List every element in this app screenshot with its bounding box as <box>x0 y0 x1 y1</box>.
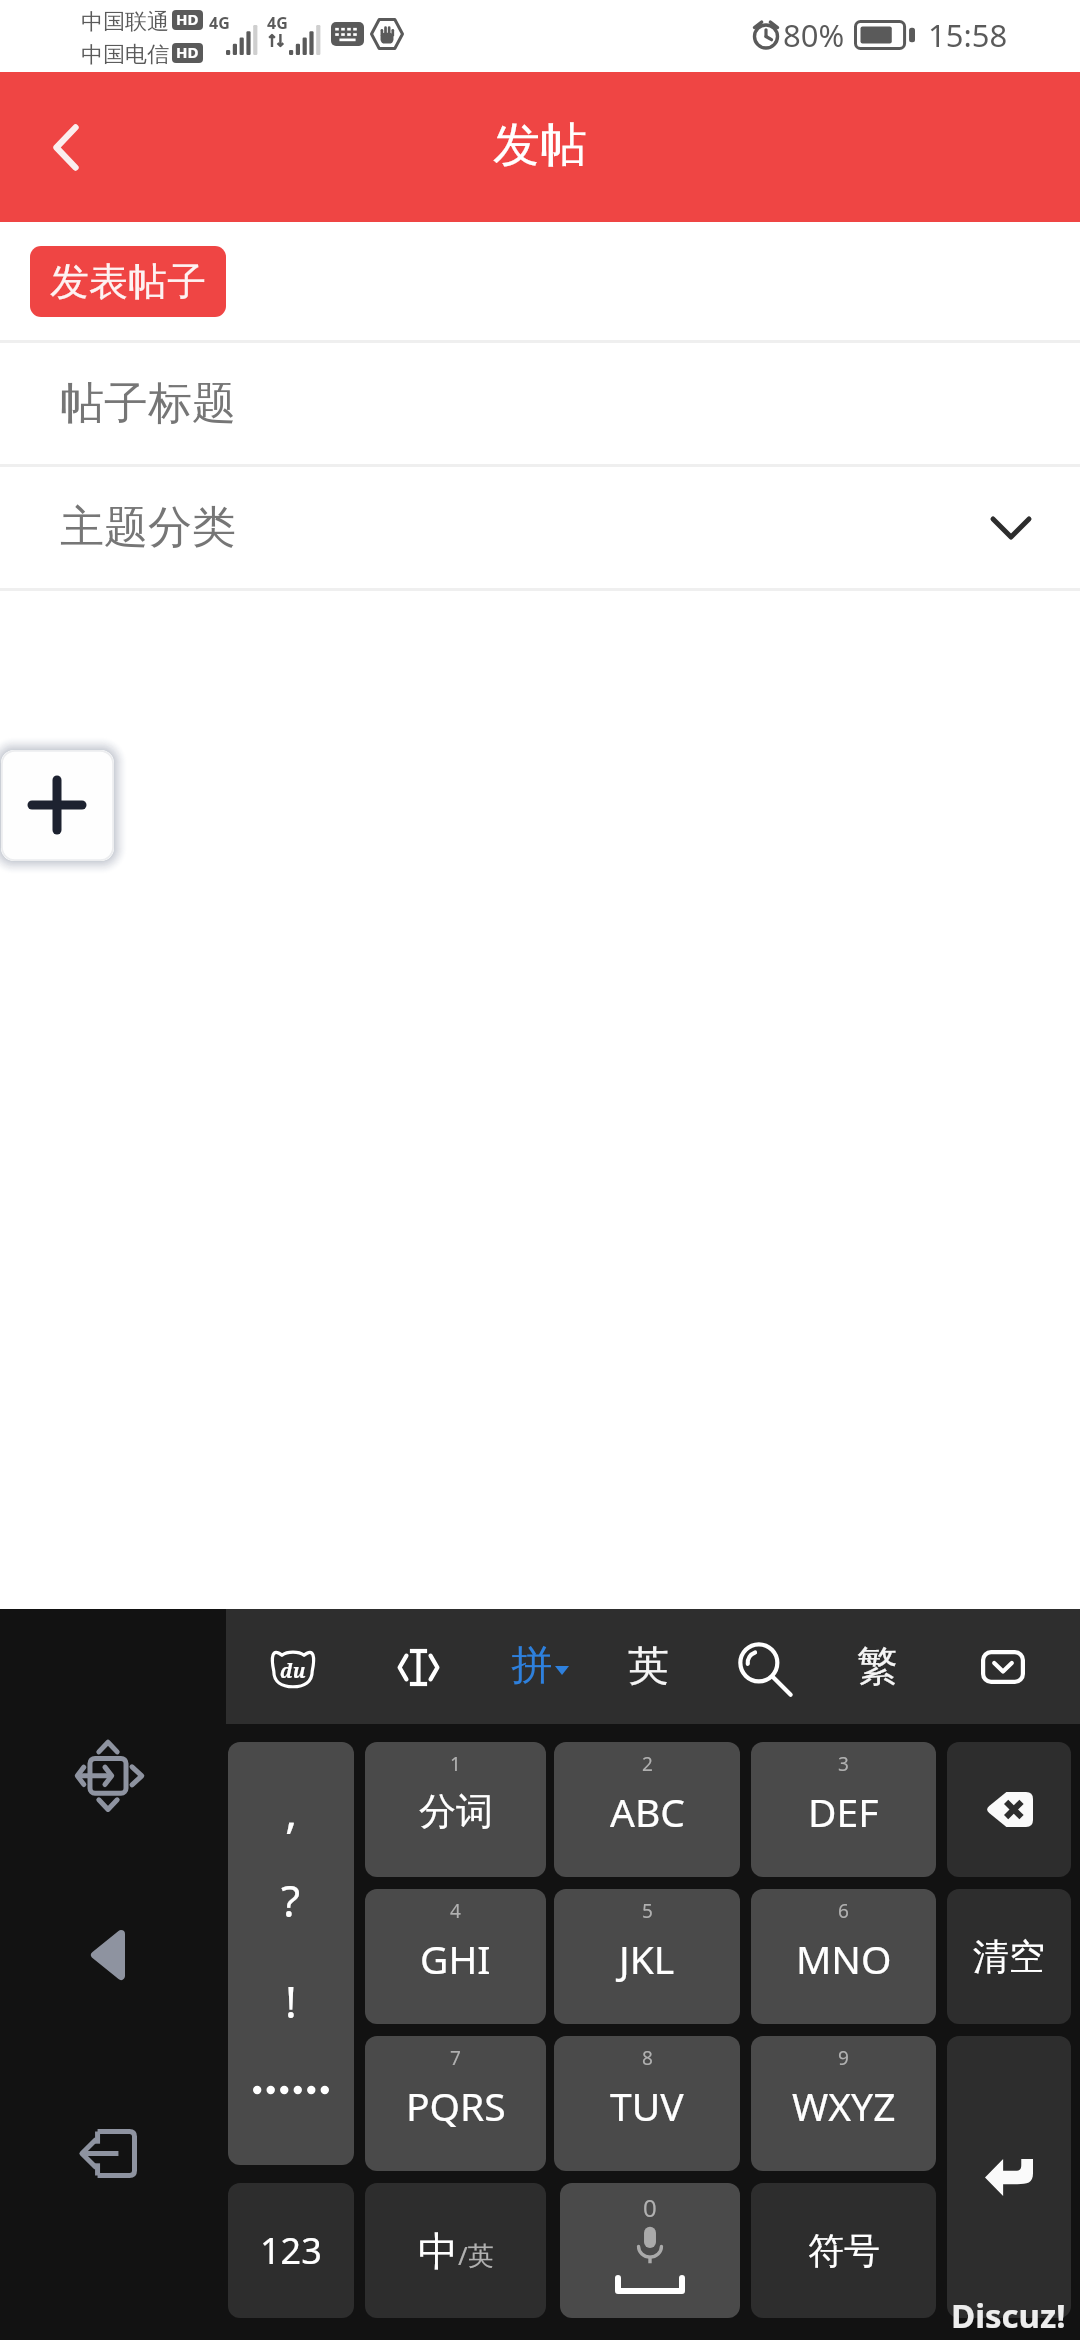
button[interactable]: 帖子标题 <box>0 343 1080 464</box>
staticText: 9 <box>838 2045 849 2071</box>
staticText: ! <box>285 1971 297 2031</box>
button[interactable]: 清空 <box>947 1889 1071 2024</box>
button[interactable]: 9 <box>751 2036 936 2171</box>
button[interactable]: Back <box>0 72 132 222</box>
staticText: ABC <box>610 1785 685 1838</box>
staticText: 2 <box>642 1751 653 1777</box>
staticText: 中国电信 <box>81 41 169 69</box>
staticText: 中国联通 <box>81 8 169 36</box>
staticText: 主题分类 <box>60 500 236 555</box>
button[interactable]: 主题分类 <box>0 467 1080 588</box>
staticText: 清空 <box>973 1934 1045 1979</box>
button[interactable]: 5 <box>554 1889 740 2024</box>
staticText: JKL <box>619 1932 675 1985</box>
button[interactable]: Enter <box>947 2036 1071 2318</box>
staticText: 发表帖子 <box>50 257 206 306</box>
button[interactable]: 6 <box>751 1889 936 2024</box>
staticText: 7 <box>450 2045 461 2071</box>
staticText: 符号 <box>808 2228 880 2273</box>
button[interactable]: 符号 <box>751 2183 936 2318</box>
staticText: Discuz! <box>951 2293 1066 2338</box>
button[interactable]: Space / voice <box>560 2183 740 2318</box>
staticText: GHI <box>420 1932 491 1985</box>
staticText: WXYZ <box>792 2079 896 2132</box>
staticText: 发帖 <box>493 116 587 175</box>
button[interactable]: Move keyboard <box>58 1725 158 1825</box>
button[interactable]: Search <box>727 1631 799 1703</box>
button[interactable]: Move cursor <box>382 1631 454 1703</box>
staticText: PQRS <box>406 2079 506 2132</box>
button[interactable]: 繁 <box>841 1631 913 1703</box>
other: Backspace <box>947 1742 1071 1877</box>
button[interactable]: 中 <box>365 2183 546 2318</box>
button[interactable]: 123 <box>228 2183 354 2318</box>
staticText: 3 <box>838 1751 849 1777</box>
button[interactable]: Hide keyboard <box>58 2103 158 2203</box>
staticText: 0 <box>643 2191 657 2224</box>
staticText: HD <box>176 43 199 62</box>
staticText: 4G <box>267 12 288 34</box>
staticText: /英 <box>458 2237 494 2273</box>
button[interactable]: 1 <box>365 1742 546 1877</box>
staticText: 英 <box>628 1641 669 1693</box>
staticText: 5 <box>642 1898 653 1924</box>
staticText: 拼 <box>511 1640 552 1692</box>
button[interactable]: Add photo <box>1 750 114 861</box>
other: Enter <box>947 2036 1071 2318</box>
staticText: 中 <box>418 2226 458 2276</box>
staticText: 8 <box>642 2045 653 2071</box>
staticText: HD <box>176 10 199 29</box>
staticText: du <box>280 1658 306 1684</box>
staticText: 6 <box>838 1898 849 1924</box>
staticText: DEF <box>808 1785 879 1838</box>
button[interactable]: Baidu input method <box>257 1631 329 1703</box>
button[interactable]: 4 <box>365 1889 546 2024</box>
button[interactable]: 发表帖子 <box>30 246 226 317</box>
button[interactable]: 7 <box>365 2036 546 2171</box>
button[interactable]: Previous candidates <box>58 1905 158 2005</box>
staticText: 4 <box>450 1898 461 1924</box>
staticText: MNO <box>796 1932 892 1985</box>
staticText: 帖子标题 <box>60 376 236 431</box>
staticText: TUV <box>610 2079 684 2132</box>
button[interactable]: 3 <box>751 1742 936 1877</box>
staticText: , <box>285 1779 298 1842</box>
staticText: 分词 <box>419 1788 493 1835</box>
staticText: ? <box>281 1870 301 1930</box>
staticText: 15:58 <box>928 14 1008 56</box>
button[interactable]: Hide keyboard <box>967 1631 1039 1703</box>
button[interactable]: Punctuation <box>228 1742 354 2165</box>
staticText: 4G <box>209 12 230 34</box>
staticText: 123 <box>260 2226 322 2275</box>
button[interactable]: 8 <box>554 2036 740 2171</box>
other: Punctuation <box>228 1742 354 2165</box>
staticText: 80% <box>783 14 845 56</box>
staticText: 1 <box>450 1751 461 1777</box>
button[interactable]: 拼 <box>504 1631 576 1703</box>
button[interactable]: 英 <box>612 1631 684 1703</box>
button[interactable]: 2 <box>554 1742 740 1877</box>
staticText: 繁 <box>857 1641 898 1693</box>
other: Space / voice <box>560 2183 740 2318</box>
button[interactable]: Backspace <box>947 1742 1071 1877</box>
